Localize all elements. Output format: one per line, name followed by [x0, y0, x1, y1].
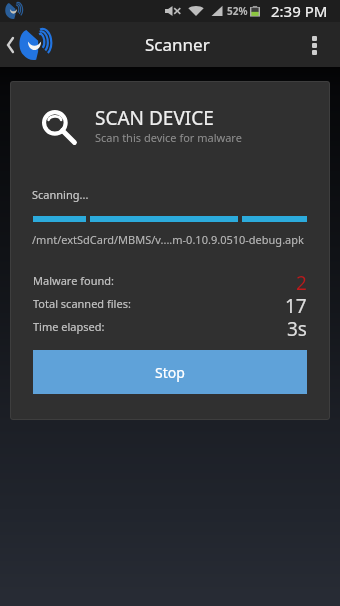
staticText: 2:39 PM — [271, 1, 328, 21]
staticText: Time elapsed: — [33, 319, 105, 334]
button[interactable]: Stop — [33, 350, 307, 394]
staticText: 52% — [227, 4, 248, 18]
staticText: Stop — [155, 363, 185, 382]
staticText: Scanning... — [32, 187, 89, 202]
staticText: 2 — [296, 270, 307, 290]
button[interactable]: Navigate up — [0, 30, 58, 60]
staticText: 3s — [287, 316, 307, 336]
staticText: 17 — [285, 293, 307, 313]
staticText: Scan this device for malware — [95, 130, 242, 145]
staticText: SCAN DEVICE — [95, 105, 214, 131]
staticText: Total scanned files: — [33, 296, 131, 311]
staticText: Malware found: — [33, 273, 114, 288]
button[interactable]: More options — [294, 25, 334, 65]
staticText: Scanner — [145, 33, 210, 56]
staticText: /mnt/extSdCard/MBMS/v....m-0.10.9.0510-d… — [32, 232, 322, 247]
